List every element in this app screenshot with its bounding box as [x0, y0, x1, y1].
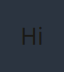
- staticText: Hi: [20, 21, 43, 51]
